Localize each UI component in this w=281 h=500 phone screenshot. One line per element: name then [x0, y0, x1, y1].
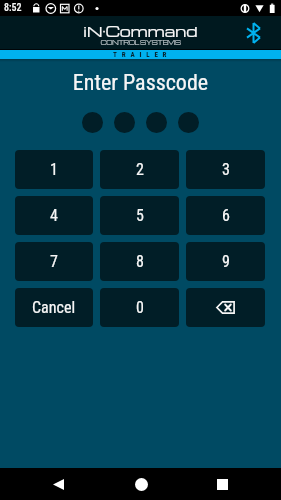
button[interactable]: Cancel	[15, 288, 93, 327]
staticText: Cancel	[32, 298, 76, 317]
button[interactable]: 0	[100, 288, 179, 327]
staticText: iN·Command	[0, 21, 281, 41]
staticText: 2	[136, 160, 144, 179]
staticText: 1	[50, 160, 58, 179]
staticText: 0	[136, 298, 144, 317]
button[interactable]: Bluetooth	[242, 22, 264, 44]
button[interactable]: 6	[186, 196, 265, 235]
button[interactable]: 2	[100, 150, 179, 189]
button[interactable]: 1	[15, 150, 93, 189]
staticText: 4	[50, 206, 58, 225]
staticText: Enter Passcode	[0, 70, 281, 96]
button[interactable]: 4	[15, 196, 93, 235]
button[interactable]: Back	[41, 468, 75, 500]
button[interactable]: 9	[186, 242, 265, 281]
staticText: 3	[222, 160, 230, 179]
button[interactable]: 3	[186, 150, 265, 189]
button[interactable]: 7	[15, 242, 93, 281]
staticText: 9	[222, 252, 230, 271]
staticText: 5	[136, 206, 144, 225]
staticText: 6	[222, 206, 230, 225]
button[interactable]: 5	[100, 196, 179, 235]
staticText: CONTROL SYSTEMS	[0, 38, 281, 47]
staticText: 7	[50, 252, 58, 271]
button[interactable]: Recent apps	[205, 468, 239, 500]
button[interactable]: Backspace	[186, 288, 265, 327]
staticText: 8:52	[4, 2, 22, 14]
button[interactable]: Home	[124, 468, 158, 500]
staticText: TRAILER	[113, 51, 172, 59]
staticText: 8	[136, 252, 144, 271]
button[interactable]: 8	[100, 242, 179, 281]
